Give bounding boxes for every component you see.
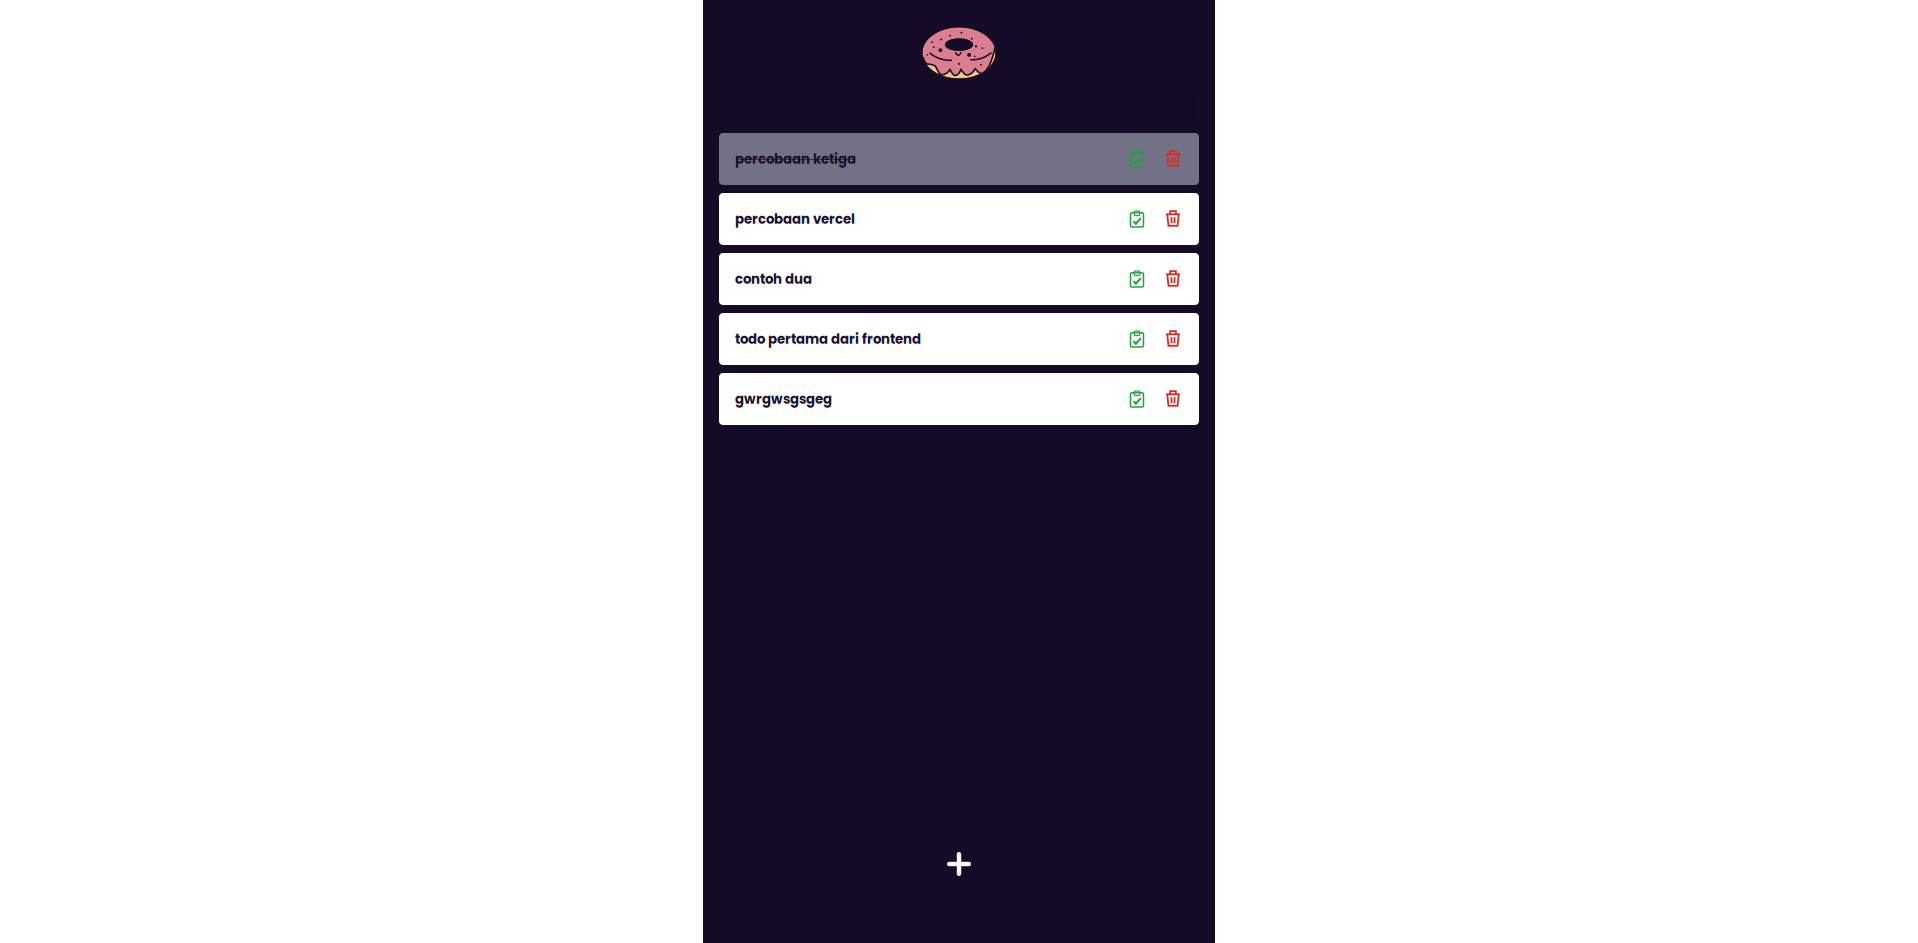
- button[interactable]: Delete: [1155, 193, 1191, 245]
- staticText: percobaan ketiga: [735, 150, 856, 168]
- button[interactable]: todo pertama dari frontend: [719, 313, 1199, 365]
- button[interactable]: Mark complete: [1119, 253, 1155, 305]
- button[interactable]: Delete: [1155, 313, 1191, 365]
- button[interactable]: percobaan vercel: [719, 193, 1199, 245]
- staticText: percobaan vercel: [735, 210, 855, 228]
- button[interactable]: gwrgwsgsgeg: [719, 373, 1199, 425]
- staticText: contoh dua: [735, 270, 812, 288]
- button[interactable]: Delete: [1155, 373, 1191, 425]
- button[interactable]: Mark complete: [1119, 133, 1155, 185]
- staticText: todo pertama dari frontend: [735, 330, 921, 348]
- button[interactable]: Delete: [1155, 133, 1191, 185]
- button[interactable]: Add todo: [931, 836, 987, 892]
- staticText: gwrgwsgsgeg: [735, 390, 832, 408]
- button[interactable]: Mark complete: [1119, 373, 1155, 425]
- button[interactable]: Mark complete: [1119, 313, 1155, 365]
- button[interactable]: Mark complete: [1119, 193, 1155, 245]
- button[interactable]: percobaan ketiga: [719, 133, 1199, 185]
- button[interactable]: Delete: [1155, 253, 1191, 305]
- button[interactable]: contoh dua: [719, 253, 1199, 305]
